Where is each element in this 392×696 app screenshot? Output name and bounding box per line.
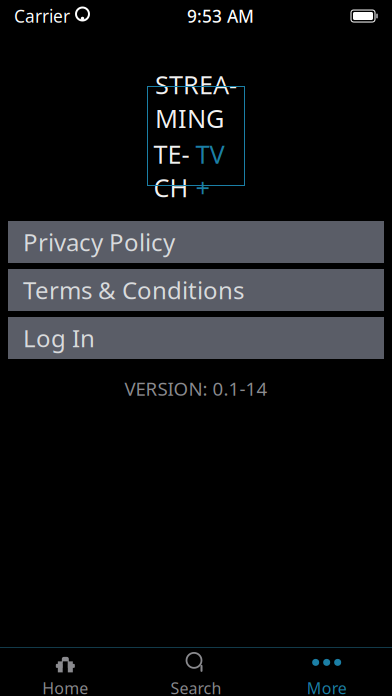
staticText: 9:53 AM (187, 4, 254, 27)
staticText: More (307, 677, 347, 696)
staticText: TECH (153, 137, 189, 204)
button[interactable]: Search (131, 648, 261, 696)
staticText: TV+ (195, 137, 224, 204)
button[interactable]: Log In (8, 317, 384, 359)
button[interactable]: More (261, 648, 392, 696)
staticText: Home (42, 677, 88, 696)
button[interactable]: Privacy Policy (8, 221, 384, 263)
staticText: STREAMING (155, 68, 237, 135)
staticText: Log In (23, 322, 95, 354)
staticText: Search (170, 677, 221, 696)
staticText: Terms & Conditions (23, 274, 244, 306)
staticText: VERSION: 0.1-14 (124, 376, 267, 401)
staticText: Privacy Policy (23, 226, 175, 258)
staticText: Carrier (14, 4, 70, 27)
button[interactable]: Home (0, 648, 131, 696)
button[interactable]: Terms & Conditions (8, 269, 384, 311)
